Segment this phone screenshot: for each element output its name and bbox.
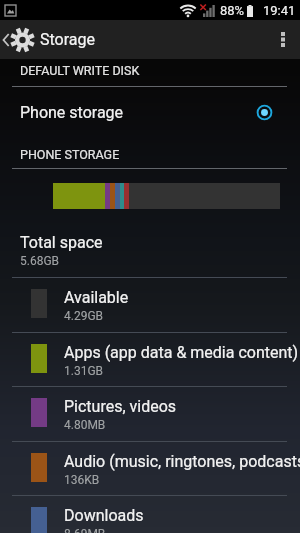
staticText: 19:41 — [263, 3, 296, 18]
staticText: Available — [64, 288, 129, 307]
button[interactable]: Total space — [0, 223, 300, 277]
staticText: Apps (app data & media content) — [64, 343, 299, 362]
staticText: Total space — [20, 233, 103, 252]
button[interactable]: Navigate up — [0, 20, 34, 59]
button[interactable]: Apps (app data & media content) — [0, 333, 300, 387]
button[interactable]: Pictures, videos — [0, 387, 300, 441]
button[interactable]: Available — [0, 278, 300, 332]
staticText: PHONE STORAGE — [20, 147, 120, 162]
staticText: 4.29GB — [64, 309, 104, 323]
staticText: Pictures, videos — [64, 397, 177, 416]
staticText: 136KB — [64, 473, 100, 487]
staticText: 88% — [220, 3, 245, 18]
staticText: 1.31GB — [64, 364, 104, 378]
staticText: Phone storage — [20, 103, 124, 122]
staticText: Storage — [40, 30, 95, 49]
staticText: 5.68GB — [20, 254, 60, 268]
staticText: Audio (music, ringtones, podcasts etc) — [64, 452, 300, 471]
button[interactable]: Downloads — [0, 496, 300, 533]
button[interactable]: Audio (music, ringtones, podcasts etc) — [0, 442, 300, 496]
staticText: DEFAULT WRITE DISK — [20, 63, 140, 78]
button[interactable]: Phone storage — [0, 87, 300, 140]
button[interactable]: More options — [266, 20, 300, 59]
staticText: 8.69MB — [64, 527, 106, 533]
staticText: Downloads — [64, 506, 144, 525]
staticText: 4.80MB — [64, 418, 106, 432]
